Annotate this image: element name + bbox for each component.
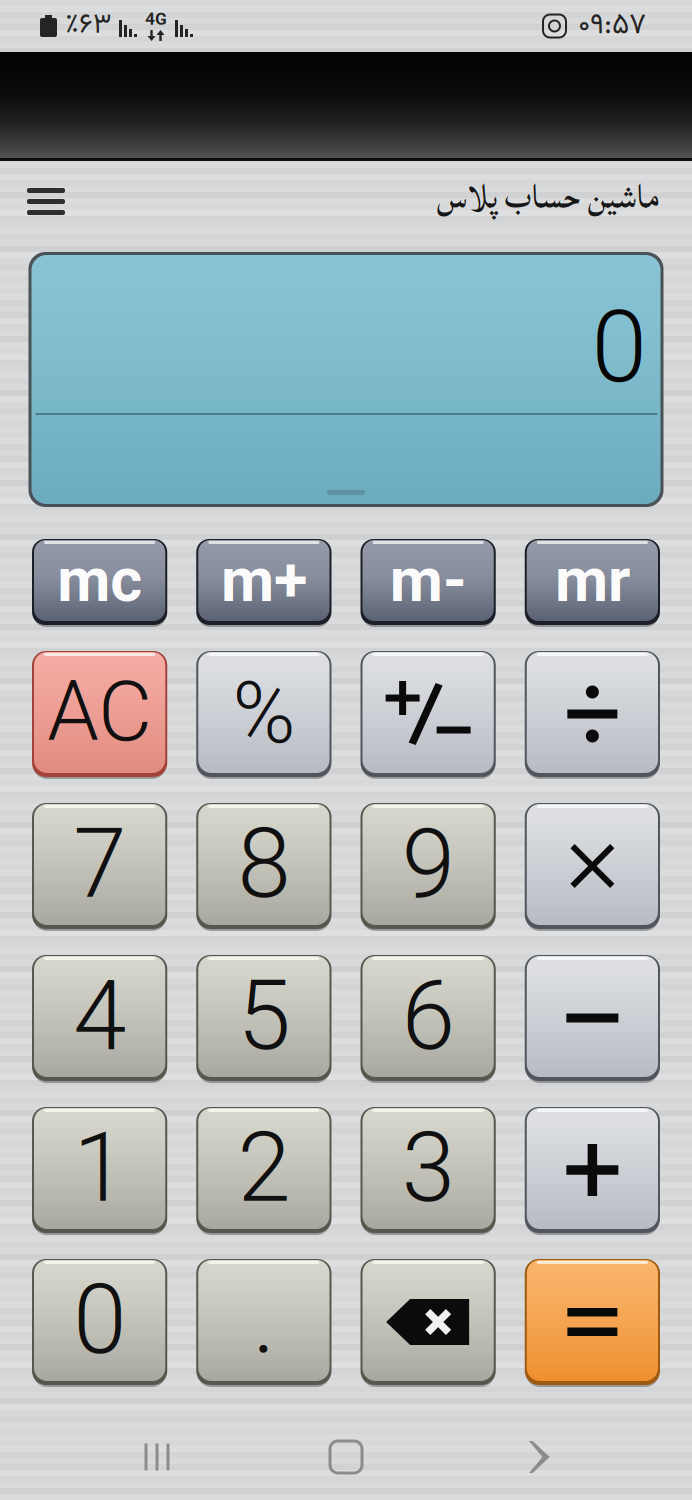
button[interactable]: 3 <box>360 1105 496 1235</box>
button[interactable]: Divide <box>525 649 660 779</box>
button[interactable]: 2 <box>196 1105 331 1235</box>
staticText: AC <box>47 664 152 760</box>
button[interactable]: Operator <box>525 1105 660 1235</box>
button[interactable]: Menu <box>0 161 93 252</box>
button[interactable]: 1 <box>32 1105 167 1235</box>
button[interactable]: Operator <box>525 953 660 1083</box>
staticText: 1 <box>73 1112 126 1224</box>
button[interactable]: Plus minus <box>360 649 496 779</box>
button[interactable]: % <box>196 649 331 779</box>
button[interactable]: mr <box>525 537 660 627</box>
staticText: ٪۶۳ <box>65 4 111 48</box>
button[interactable]: 8 <box>196 801 331 931</box>
button[interactable]: m- <box>360 537 496 627</box>
button[interactable]: Recents <box>0 1421 314 1493</box>
staticText: 5 <box>237 960 290 1072</box>
staticText: 0 <box>591 288 646 406</box>
staticText: 7 <box>73 808 126 920</box>
button[interactable]: Operator <box>525 801 660 931</box>
staticText: 4 <box>73 960 126 1072</box>
staticText: mc <box>57 544 142 616</box>
button[interactable]: Backspace <box>360 1257 496 1387</box>
staticText: ماشین حساب پلاس <box>436 165 659 230</box>
button[interactable]: . <box>196 1257 331 1387</box>
staticText: m+ <box>221 544 307 616</box>
button[interactable]: Back <box>378 1421 692 1493</box>
staticText: 4G <box>145 9 167 29</box>
staticText: 0 <box>73 1264 126 1376</box>
button[interactable]: AC <box>32 649 167 779</box>
button[interactable]: mc <box>32 537 167 627</box>
staticText: mr <box>555 544 630 616</box>
button[interactable]: 6 <box>360 953 496 1083</box>
button[interactable]: Equals <box>525 1257 660 1387</box>
staticText: . <box>252 1264 275 1376</box>
button[interactable]: 0 <box>32 1257 167 1387</box>
button[interactable]: 5 <box>196 953 331 1083</box>
staticText: 6 <box>402 960 455 1072</box>
button[interactable]: Home <box>314 1421 378 1493</box>
staticText: % <box>232 663 295 763</box>
staticText: 2 <box>237 1112 290 1224</box>
button[interactable]: 4 <box>32 953 167 1083</box>
staticText: 8 <box>237 808 290 920</box>
button[interactable]: 7 <box>32 801 167 931</box>
button[interactable]: m+ <box>196 537 331 627</box>
staticText: 9 <box>402 808 455 920</box>
button[interactable]: 9 <box>360 801 496 931</box>
staticText: 3 <box>402 1112 455 1224</box>
staticText: m- <box>390 544 467 616</box>
staticText: ۰۹:۵۷ <box>578 3 646 49</box>
